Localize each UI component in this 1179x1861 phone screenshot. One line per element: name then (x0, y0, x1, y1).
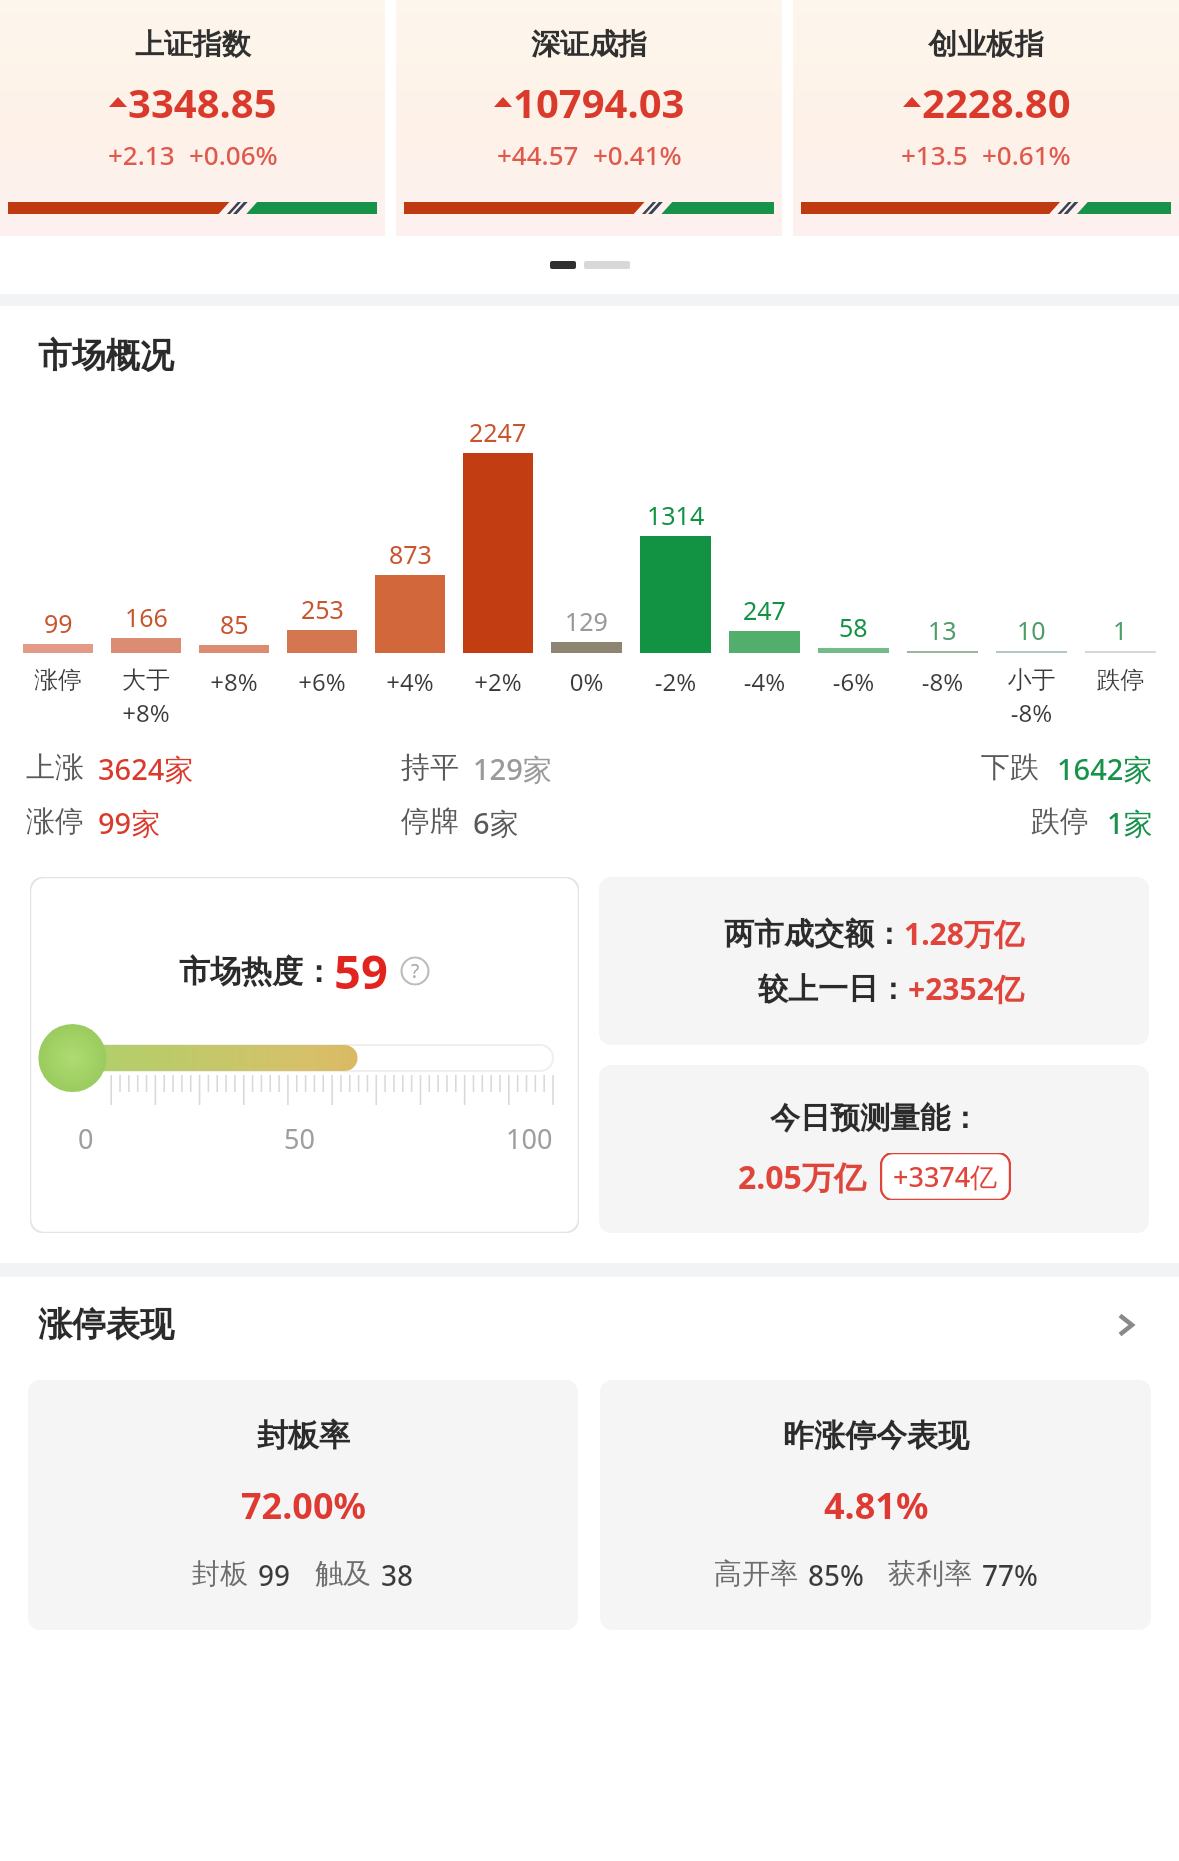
button[interactable]: 创业板指 (793, 0, 1179, 236)
button[interactable]: 昨涨停今表现 (600, 1380, 1151, 1630)
staticText: 涨停 (14, 665, 102, 695)
staticText: 创业板指 (928, 26, 1044, 63)
staticText: 1家 (1107, 803, 1153, 843)
staticText: 38 (381, 1556, 414, 1594)
staticText: -6% (809, 665, 898, 698)
other: 更多 (1111, 1310, 1141, 1340)
staticText: 获利率 (888, 1556, 972, 1591)
staticText: 50 (284, 1120, 315, 1157)
button[interactable]: 市场热度： (30, 877, 579, 1233)
staticText: 较上一日： (758, 970, 908, 1008)
staticText: +2% (454, 665, 542, 698)
staticText: 1314 (647, 498, 705, 532)
staticText: +44.57 (497, 137, 579, 172)
staticText: 下跌 (981, 749, 1039, 786)
staticText: +2352亿 (908, 968, 1024, 1009)
staticText: 市场概况 (38, 334, 174, 377)
staticText: 持平 (401, 749, 459, 786)
staticText: +4% (366, 665, 454, 698)
staticText: 166 (125, 600, 168, 634)
staticText: 0% (542, 665, 631, 698)
staticText: 大于 +8% (102, 665, 190, 727)
button[interactable]: 说明 (400, 956, 430, 986)
staticText: 99 (258, 1556, 291, 1594)
staticText: 13 (928, 613, 957, 647)
staticText: 77% (982, 1556, 1038, 1594)
staticText: -4% (720, 665, 809, 698)
staticText: -8% (898, 665, 987, 698)
staticText: 2228.80 (922, 75, 1071, 129)
staticText: 跌停 (1076, 665, 1165, 695)
button[interactable]: 两市成交额： (599, 877, 1149, 1045)
staticText: 昨涨停今表现 (783, 1416, 969, 1455)
staticText: ? (411, 958, 420, 984)
staticText: 99 (44, 606, 73, 640)
staticText: 129 (565, 604, 608, 638)
staticText: +3374亿 (893, 1158, 998, 1195)
staticText: 3624家 (98, 749, 194, 789)
staticText: 3348.85 (128, 75, 277, 129)
staticText: +8% (190, 665, 278, 698)
staticText: 85 (220, 607, 249, 641)
staticText: 触及 (315, 1556, 371, 1591)
staticText: 100 (506, 1120, 553, 1157)
staticText: 2247 (469, 415, 527, 449)
staticText: 上涨 (26, 749, 84, 786)
staticText: 两市成交额： (724, 915, 904, 953)
staticText: 跌停 (1031, 803, 1089, 840)
staticText: 高开率 (714, 1556, 798, 1591)
staticText: 深证成指 (531, 26, 647, 63)
staticText: 1642家 (1057, 749, 1153, 789)
staticText: 涨停 (26, 803, 84, 840)
staticText: 873 (389, 537, 432, 571)
button[interactable]: 今日预测量能： (599, 1065, 1149, 1233)
staticText: +2.13 (108, 137, 175, 172)
button[interactable]: 封板率 (28, 1380, 578, 1630)
staticText: 1.28万亿 (904, 913, 1024, 954)
staticText: 10 (1017, 613, 1046, 647)
staticText: 封板率 (257, 1416, 350, 1455)
staticText: 0 (78, 1120, 94, 1157)
staticText: 今日预测量能： (770, 1099, 980, 1137)
staticText: +0.61% (982, 137, 1071, 172)
staticText: 涨停表现 (38, 1303, 174, 1346)
staticText: 1 (1113, 613, 1128, 647)
staticText: 72.00% (241, 1481, 366, 1530)
staticText: +0.41% (593, 137, 682, 172)
staticText: +13.5 (901, 137, 968, 172)
staticText: 10794.03 (513, 75, 685, 129)
staticText: 停牌 (401, 803, 459, 840)
staticText: 253 (301, 592, 344, 626)
staticText: 99家 (98, 803, 161, 843)
staticText: 58 (839, 610, 868, 644)
staticText: 129家 (473, 749, 552, 789)
staticText: 2.05万亿 (738, 1155, 866, 1199)
staticText: 247 (743, 593, 786, 627)
staticText: 4.81% (824, 1481, 929, 1530)
staticText: 封板 (192, 1556, 248, 1591)
staticText: 小于 -8% (987, 665, 1076, 727)
staticText: 59 (334, 939, 388, 1003)
button[interactable]: 上证指数 (0, 0, 385, 236)
button[interactable]: 涨停表现 (0, 1303, 1179, 1346)
staticText: +0.06% (189, 137, 278, 172)
staticText: 6家 (473, 803, 519, 843)
staticText: 市场热度： (179, 952, 334, 991)
button[interactable]: 深证成指 (396, 0, 782, 236)
staticText: 85% (808, 1556, 864, 1594)
staticText: 上证指数 (135, 26, 251, 63)
staticText: +6% (278, 665, 366, 698)
staticText: -2% (631, 665, 720, 698)
